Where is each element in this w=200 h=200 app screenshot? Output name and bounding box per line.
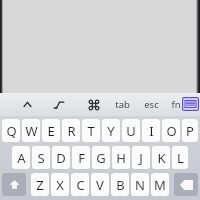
button[interactable]: fn — [167, 93, 185, 116]
button[interactable]: F — [72, 146, 90, 169]
staticText: N — [135, 176, 145, 194]
staticText: X — [56, 176, 64, 194]
button[interactable]: D — [52, 146, 70, 169]
staticText: Q — [6, 122, 17, 140]
staticText: I — [149, 122, 154, 140]
staticText: H — [116, 149, 126, 167]
button[interactable]: S — [32, 146, 50, 169]
button[interactable]: B — [111, 173, 129, 196]
button[interactable]: M — [151, 173, 169, 196]
staticText: J — [139, 149, 143, 167]
staticText: B — [116, 176, 125, 194]
staticText: O — [166, 122, 177, 140]
button[interactable]: K — [152, 146, 170, 169]
staticText: A — [17, 149, 26, 167]
button[interactable]: A — [12, 146, 30, 169]
button[interactable]: T — [82, 119, 100, 142]
button[interactable]: Option — [50, 93, 68, 116]
staticText: G — [96, 149, 106, 167]
button[interactable]: J — [132, 146, 150, 169]
button[interactable]: L — [172, 146, 188, 169]
button[interactable]: tab — [111, 93, 133, 116]
staticText: fn — [171, 98, 181, 111]
button[interactable]: C — [71, 173, 89, 196]
button[interactable]: R — [62, 119, 80, 142]
staticText: C — [76, 176, 85, 194]
staticText: M — [154, 176, 166, 194]
staticText: esc — [144, 98, 159, 111]
button[interactable]: U — [122, 119, 140, 142]
staticText: W — [25, 122, 38, 140]
staticText: Y — [107, 122, 115, 140]
button[interactable]: esc — [140, 93, 162, 116]
button[interactable]: Command — [85, 93, 103, 116]
button[interactable]: Control — [18, 93, 36, 116]
button[interactable]: I — [142, 119, 160, 142]
staticText: E — [47, 122, 55, 140]
staticText: tab — [115, 98, 130, 111]
button[interactable]: P — [182, 119, 198, 142]
staticText: D — [56, 149, 66, 167]
button[interactable]: N — [131, 173, 149, 196]
button[interactable]: O — [162, 119, 180, 142]
button[interactable]: H — [112, 146, 130, 169]
button[interactable]: Z — [31, 173, 49, 196]
button[interactable]: X — [51, 173, 69, 196]
staticText: S — [37, 149, 45, 167]
button[interactable]: E — [42, 119, 60, 142]
button[interactable]: V — [91, 173, 109, 196]
button[interactable]: Q — [2, 119, 20, 142]
staticText: K — [157, 149, 166, 167]
staticText: L — [177, 149, 184, 167]
staticText: V — [96, 176, 104, 194]
staticText: U — [126, 122, 136, 140]
button[interactable]: Delete — [174, 173, 198, 196]
staticText: F — [78, 149, 85, 167]
button[interactable]: Shift — [2, 173, 26, 196]
staticText: Z — [36, 176, 44, 194]
staticText: P — [186, 122, 194, 140]
staticText: R — [67, 122, 76, 140]
button[interactable]: Hide keyboard — [182, 97, 199, 111]
button[interactable]: G — [92, 146, 110, 169]
button[interactable]: Y — [102, 119, 120, 142]
button[interactable]: W — [22, 119, 40, 142]
staticText: T — [87, 122, 95, 140]
